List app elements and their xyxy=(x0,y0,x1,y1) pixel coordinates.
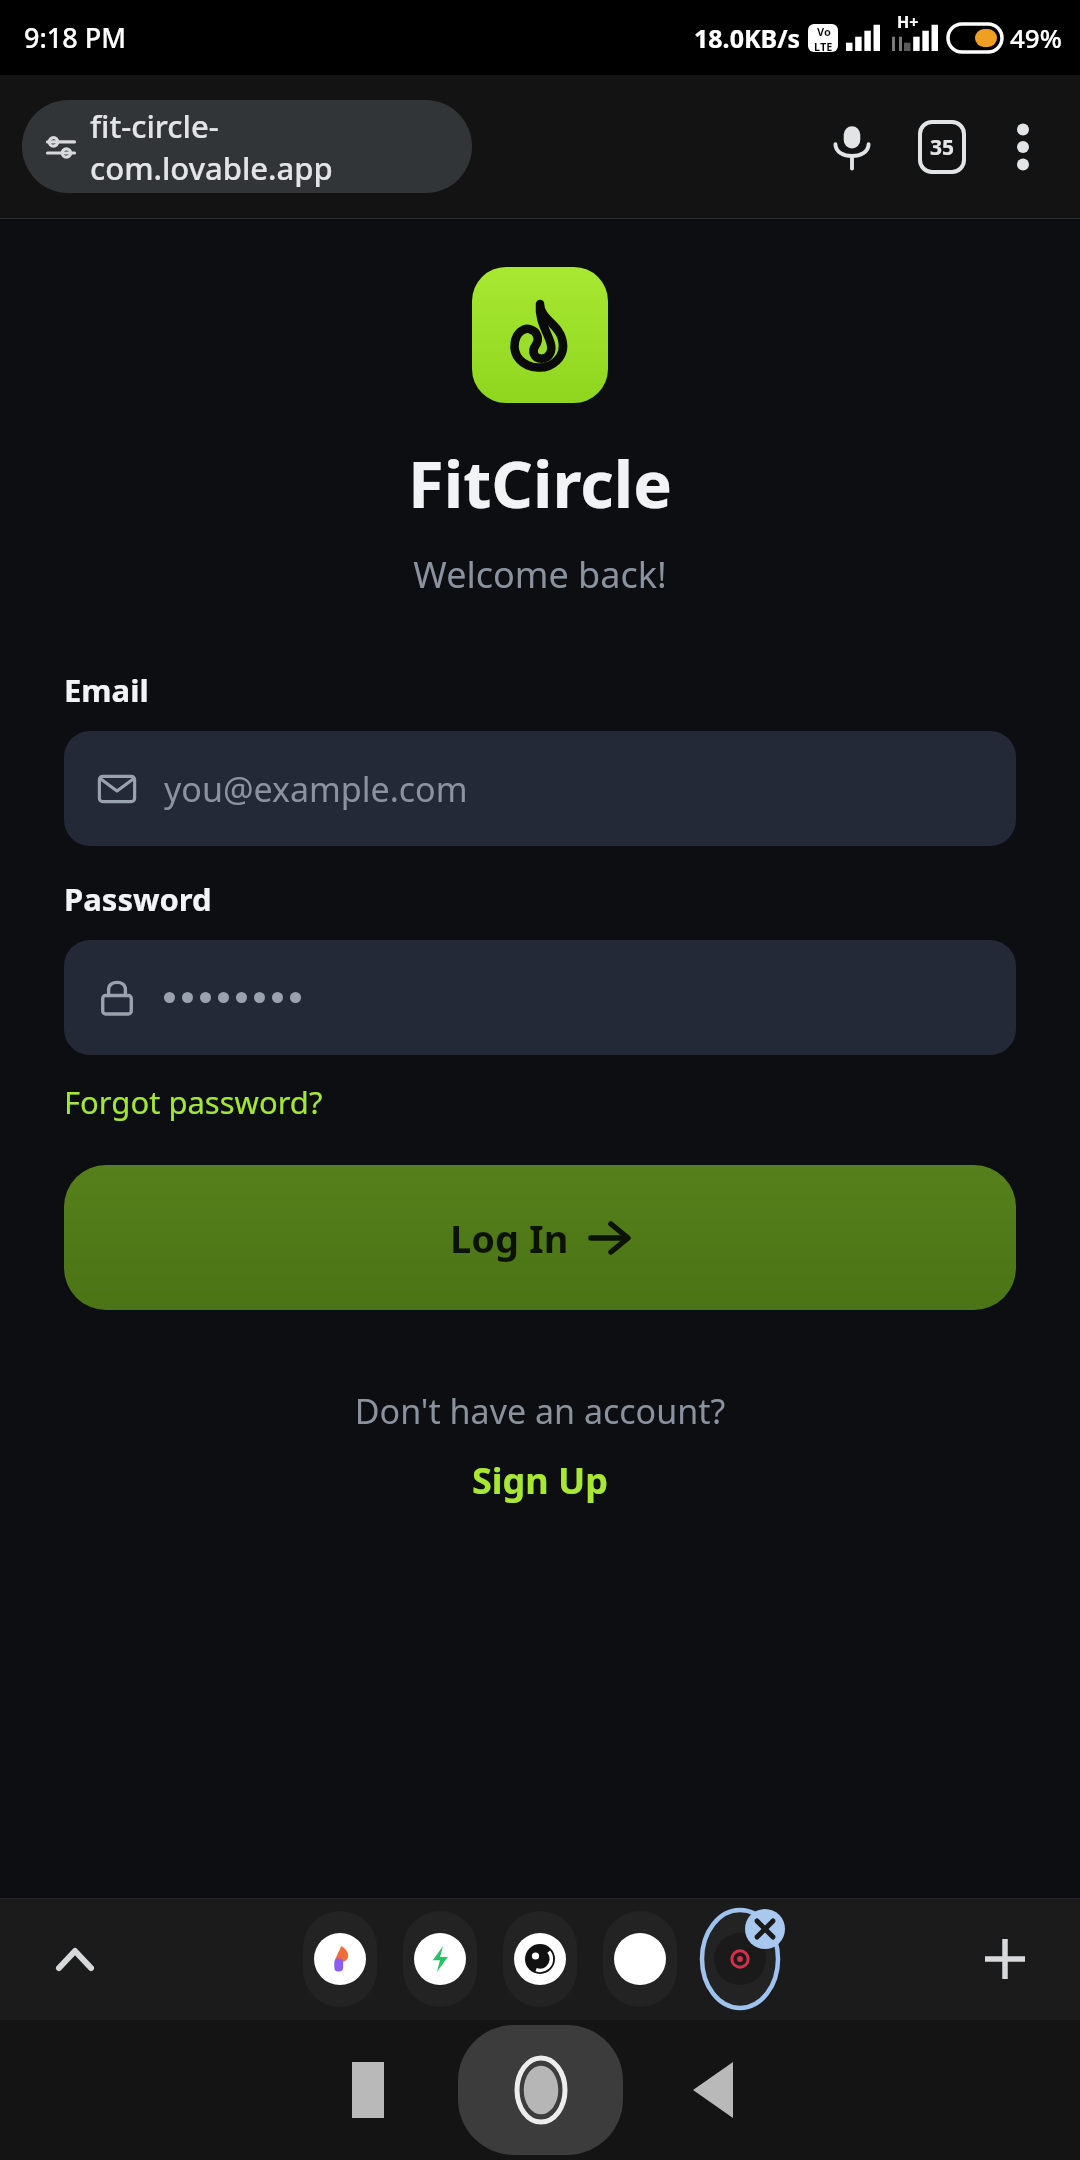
staticText: 9:18 PM xyxy=(24,19,126,56)
button[interactable]: Tabs xyxy=(902,107,982,187)
staticText: Log In xyxy=(450,1212,569,1264)
staticText: 35 xyxy=(930,133,955,162)
button[interactable]: Close tab xyxy=(745,1909,785,1949)
staticText: Welcome back! xyxy=(0,550,1080,599)
staticText: 18.0KB/s xyxy=(694,21,801,55)
staticText: LTE xyxy=(814,39,833,52)
button[interactable]: Voice search xyxy=(812,107,892,187)
button[interactable]: Home xyxy=(458,2025,623,2155)
staticText: Don't have an account? xyxy=(0,1388,1080,1434)
button[interactable]: fit-circle-com.lovable.app xyxy=(22,100,472,193)
button[interactable]: Tab 1 xyxy=(301,1909,379,2009)
staticText: H+ xyxy=(897,11,919,33)
button[interactable]: Sign Up xyxy=(472,1456,609,1505)
staticText: Forgot password? xyxy=(64,1081,323,1123)
button[interactable]: More options xyxy=(988,112,1058,182)
staticText: fit-circle-com.lovable.app xyxy=(90,105,448,189)
button[interactable] xyxy=(64,940,1016,1055)
staticText: Sign Up xyxy=(472,1456,609,1505)
button[interactable]: Tab 2 xyxy=(401,1909,479,2009)
staticText: Email xyxy=(64,669,149,711)
button[interactable]: New tab xyxy=(970,1924,1040,1994)
staticText: 49% xyxy=(1010,20,1062,55)
button[interactable]: Expand xyxy=(40,1924,110,1994)
button[interactable]: Tab 4 xyxy=(601,1909,679,2009)
staticText: Vo xyxy=(817,24,831,39)
button[interactable]: Forgot password? xyxy=(64,1081,323,1123)
staticText: Password xyxy=(64,878,212,920)
button[interactable]: Tab 5 xyxy=(701,1909,779,2009)
button[interactable]: Log In xyxy=(64,1165,1016,1310)
button[interactable]: Back xyxy=(653,2030,773,2150)
staticText: FitCircle xyxy=(0,439,1080,528)
staticText: you@example.com xyxy=(164,766,468,812)
button[interactable]: Tab 3 xyxy=(501,1909,579,2009)
button[interactable]: Recent apps xyxy=(308,2030,428,2150)
button[interactable]: you@example.com xyxy=(64,731,1016,846)
